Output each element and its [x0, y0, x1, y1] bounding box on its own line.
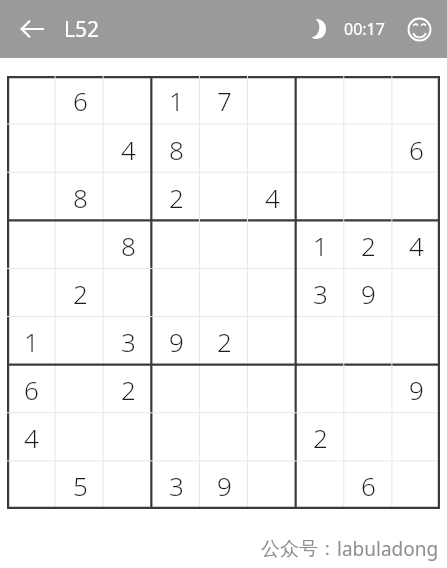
button[interactable]: 9 — [392, 365, 440, 413]
staticText: 9 — [169, 324, 184, 359]
button[interactable]: 1 — [296, 221, 344, 269]
button[interactable] — [56, 365, 104, 413]
staticText: 8 — [121, 228, 136, 263]
button[interactable] — [200, 125, 248, 173]
button[interactable] — [392, 317, 440, 365]
button[interactable] — [200, 269, 248, 317]
button[interactable]: 8 — [152, 125, 200, 173]
button[interactable] — [344, 317, 392, 365]
button[interactable]: 4 — [7, 413, 56, 461]
button[interactable]: 8 — [56, 173, 104, 221]
button[interactable]: 4 — [104, 125, 152, 173]
button[interactable] — [248, 269, 296, 317]
button[interactable] — [344, 413, 392, 461]
button[interactable] — [104, 413, 152, 461]
button[interactable] — [7, 461, 56, 509]
button[interactable] — [7, 76, 56, 125]
button[interactable]: 9 — [200, 461, 248, 509]
button[interactable] — [200, 173, 248, 221]
button[interactable]: 2 — [344, 221, 392, 269]
button[interactable] — [248, 317, 296, 365]
button[interactable]: 6 — [344, 461, 392, 509]
button[interactable] — [248, 461, 296, 509]
button[interactable]: 4 — [392, 221, 440, 269]
button[interactable] — [200, 413, 248, 461]
button[interactable] — [344, 173, 392, 221]
staticText: 6 — [409, 132, 424, 167]
button[interactable]: 6 — [7, 365, 56, 413]
button[interactable] — [56, 125, 104, 173]
staticText: 6 — [73, 83, 88, 118]
button[interactable] — [344, 365, 392, 413]
button[interactable]: 2 — [296, 413, 344, 461]
staticText: 8 — [169, 132, 184, 167]
button[interactable] — [7, 125, 56, 173]
staticText: 2 — [121, 372, 136, 407]
staticText: 8 — [73, 180, 88, 215]
button[interactable] — [56, 317, 104, 365]
button[interactable] — [152, 269, 200, 317]
button[interactable]: Night mode — [296, 9, 336, 49]
button[interactable]: 4 — [248, 173, 296, 221]
button[interactable]: 3 — [296, 269, 344, 317]
button[interactable]: 1 — [152, 76, 200, 125]
button[interactable] — [200, 365, 248, 413]
button[interactable] — [296, 173, 344, 221]
button[interactable] — [248, 76, 296, 125]
button[interactable] — [296, 76, 344, 125]
staticText: 4 — [24, 420, 39, 455]
staticText: 9 — [409, 372, 424, 407]
button[interactable] — [7, 173, 56, 221]
button[interactable] — [56, 413, 104, 461]
button[interactable]: 2 — [104, 365, 152, 413]
button[interactable]: 3 — [104, 317, 152, 365]
button[interactable] — [392, 269, 440, 317]
button[interactable] — [344, 125, 392, 173]
button[interactable] — [296, 317, 344, 365]
button[interactable] — [248, 413, 296, 461]
staticText: 2 — [313, 420, 328, 455]
button[interactable] — [200, 221, 248, 269]
button[interactable]: 6 — [392, 125, 440, 173]
button[interactable] — [152, 365, 200, 413]
button[interactable] — [104, 269, 152, 317]
staticText: labuladong — [337, 536, 439, 562]
button[interactable] — [152, 221, 200, 269]
button[interactable] — [7, 269, 56, 317]
button[interactable] — [56, 221, 104, 269]
button[interactable] — [296, 365, 344, 413]
button[interactable]: 6 — [56, 76, 104, 125]
button[interactable] — [7, 221, 56, 269]
button[interactable] — [392, 76, 440, 125]
button[interactable] — [296, 461, 344, 509]
button[interactable]: Emoji — [399, 9, 439, 49]
button[interactable]: 3 — [152, 461, 200, 509]
button[interactable]: 5 — [56, 461, 104, 509]
button[interactable] — [248, 221, 296, 269]
button[interactable] — [152, 413, 200, 461]
button[interactable]: 1 — [7, 317, 56, 365]
button[interactable] — [248, 125, 296, 173]
button[interactable] — [104, 76, 152, 125]
staticText: 2 — [169, 180, 184, 215]
staticText: 1 — [169, 83, 184, 118]
button[interactable] — [296, 125, 344, 173]
staticText: 9 — [217, 468, 232, 503]
button[interactable]: 9 — [152, 317, 200, 365]
button[interactable] — [392, 173, 440, 221]
button[interactable] — [392, 413, 440, 461]
button[interactable]: 9 — [344, 269, 392, 317]
button[interactable]: 2 — [200, 317, 248, 365]
staticText: 1 — [313, 228, 328, 263]
button[interactable]: 2 — [152, 173, 200, 221]
button[interactable] — [104, 173, 152, 221]
button[interactable] — [392, 461, 440, 509]
staticText: 4 — [265, 180, 280, 215]
button[interactable]: 8 — [104, 221, 152, 269]
button[interactable]: 2 — [56, 269, 104, 317]
button[interactable]: 7 — [200, 76, 248, 125]
button[interactable] — [248, 365, 296, 413]
button[interactable] — [104, 461, 152, 509]
button[interactable] — [344, 76, 392, 125]
button[interactable]: Back — [10, 7, 54, 51]
